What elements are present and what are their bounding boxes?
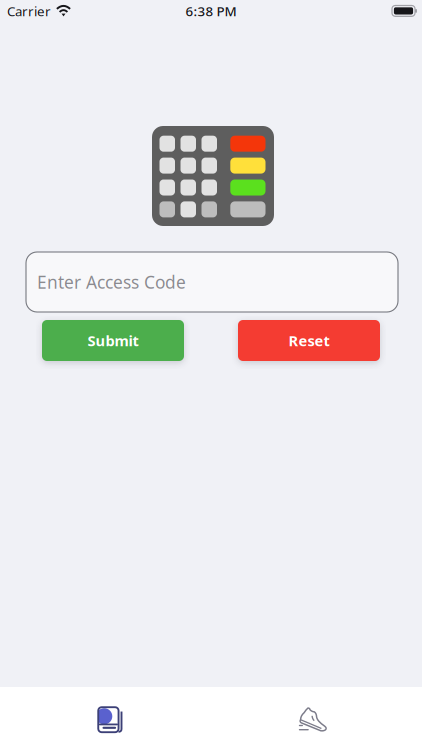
button[interactable]: Submit [42,320,184,361]
staticText: 6:38 PM [185,2,236,20]
button[interactable]: Enter Access Code [26,252,398,312]
staticText: Enter Access Code [37,270,186,293]
staticText: Reset [288,331,329,350]
staticText: Submit [87,331,138,350]
button[interactable]: Reset [238,320,380,361]
staticText: Carrier [7,2,51,20]
button[interactable]: Activity [211,687,422,750]
button[interactable]: Library [0,687,211,750]
